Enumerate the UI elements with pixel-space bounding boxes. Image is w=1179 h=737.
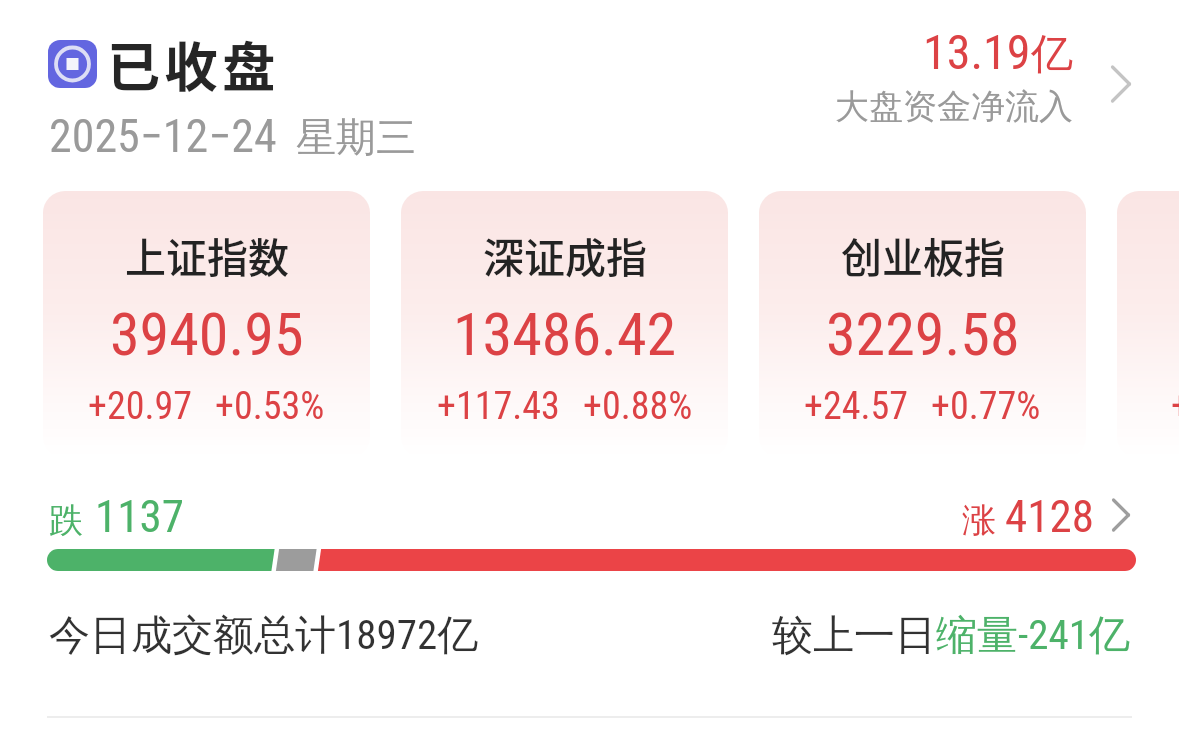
staticText: 3940.95 xyxy=(110,299,304,369)
staticText: +0.53% xyxy=(215,384,325,429)
staticText: 涨 xyxy=(962,499,996,542)
other: More fund flow xyxy=(1104,63,1138,105)
staticText: 较上一日 xyxy=(772,610,936,662)
staticText: 上证指数 xyxy=(125,225,289,284)
button[interactable]: 已收盘 xyxy=(107,26,280,103)
button[interactable]: 创业板指 xyxy=(759,191,1086,458)
staticText: 4128 xyxy=(1005,490,1094,543)
staticText: 亿 xyxy=(1031,28,1073,81)
staticText: 13.19 xyxy=(923,24,1031,80)
staticText: 深证成指 xyxy=(483,225,647,284)
button[interactable]: Market status xyxy=(48,40,97,88)
staticText: +20.97 xyxy=(88,384,192,429)
staticText: 大盘资金净流入 xyxy=(835,85,1073,128)
button[interactable]: 深证成指 xyxy=(401,191,728,458)
staticText: 创业板指 xyxy=(841,225,1005,284)
staticText: 星期三 xyxy=(296,112,416,162)
button[interactable]: 北证50 xyxy=(1117,191,1179,458)
button[interactable]: 13.19 xyxy=(790,24,1136,136)
other: More market breadth xyxy=(1106,492,1136,538)
button[interactable]: 上证指数 xyxy=(43,191,370,458)
staticText: 13486.42 xyxy=(453,299,677,369)
staticText: +0.88% xyxy=(583,384,693,429)
staticText: 3229.58 xyxy=(826,299,1020,369)
staticText: 缩量-241亿 xyxy=(936,610,1130,662)
button[interactable]: 跌 xyxy=(49,490,184,543)
staticText: 2025−12−24 xyxy=(49,109,277,163)
staticText: +3.01 xyxy=(1171,384,1179,429)
staticText: +117.43 xyxy=(437,384,560,429)
button[interactable]: 涨 xyxy=(962,490,1136,543)
staticText: 跌 xyxy=(49,499,83,542)
staticText: +0.77% xyxy=(931,384,1041,429)
staticText: 今日成交额总计18972亿 xyxy=(49,610,479,662)
staticText: +24.57 xyxy=(804,384,908,429)
staticText: 1137 xyxy=(95,490,184,543)
